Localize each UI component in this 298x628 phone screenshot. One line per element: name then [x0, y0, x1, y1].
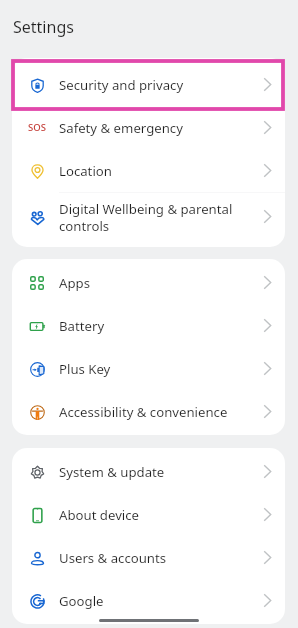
- staticText: SOS: [28, 121, 46, 134]
- button[interactable]: Accessibility & convenience: [12, 390, 285, 433]
- staticText: Safety & emergency: [59, 119, 253, 137]
- button[interactable]: Location: [12, 149, 285, 192]
- button[interactable]: Apps: [12, 261, 285, 304]
- staticText: Users & accounts: [59, 549, 253, 567]
- staticText: System & update: [59, 463, 253, 481]
- button[interactable]: Battery: [12, 304, 285, 347]
- staticText: Digital Wellbeing & parental controls: [59, 200, 253, 234]
- staticText: Security and privacy: [59, 76, 253, 94]
- staticText: Settings: [13, 16, 74, 38]
- button[interactable]: Users & accounts: [12, 536, 285, 579]
- staticText: About device: [59, 506, 253, 524]
- button[interactable]: Plus Key: [12, 347, 285, 390]
- button[interactable]: System & update: [12, 450, 285, 493]
- staticText: Battery: [59, 317, 253, 335]
- staticText: Apps: [59, 274, 253, 292]
- staticText: Google: [59, 592, 253, 610]
- button[interactable]: SOS: [12, 106, 285, 149]
- button[interactable]: Digital Wellbeing & parental controls: [12, 193, 285, 240]
- button[interactable]: Security and privacy: [12, 63, 285, 106]
- staticText: Location: [59, 162, 253, 180]
- button[interactable]: Google: [12, 579, 285, 622]
- staticText: Accessibility & convenience: [59, 403, 253, 421]
- button[interactable]: About device: [12, 493, 285, 536]
- staticText: Plus Key: [59, 360, 253, 378]
